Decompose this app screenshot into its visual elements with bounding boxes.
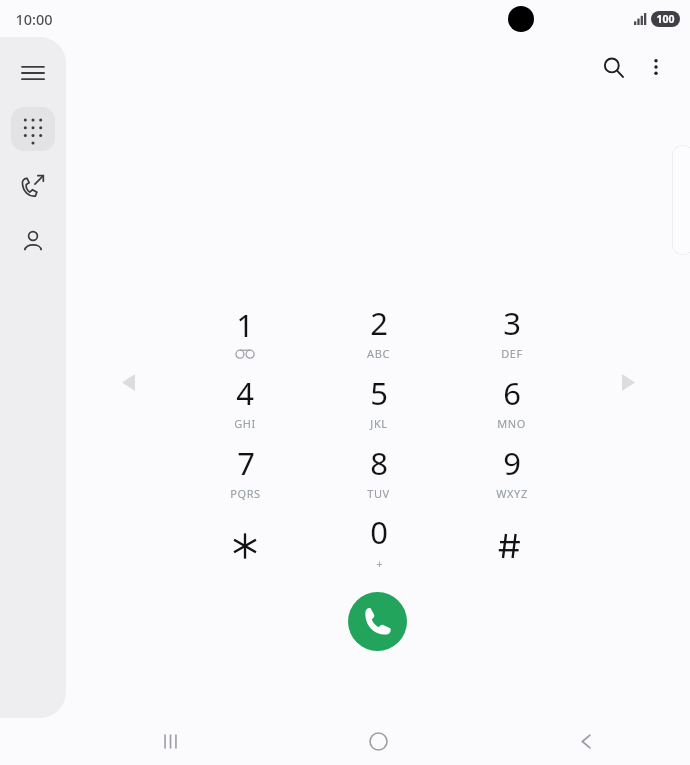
button[interactable]: 2 [312,296,445,366]
button[interactable]: Keypad [11,107,55,151]
staticText: ABC [367,346,390,361]
staticText: 8 [370,442,388,484]
staticText: 5 [370,372,388,414]
button[interactable]: Menu [11,51,55,95]
button[interactable]: Recents [11,163,55,207]
button[interactable]: Previous page [108,362,148,402]
button[interactable]: Home [274,718,482,765]
button[interactable] [445,506,578,576]
button[interactable]: Back [482,718,690,765]
staticText: + [376,556,383,571]
button[interactable]: Search [591,45,635,89]
staticText: GHI [234,416,256,431]
button[interactable]: 6 [445,366,578,436]
staticText: WXYZ [496,486,528,501]
button[interactable] [178,506,312,576]
button[interactable]: 0 [312,506,445,576]
button[interactable]: 8 [312,436,445,506]
button[interactable]: 5 [312,366,445,436]
staticText: 2 [370,302,388,344]
staticText: TUV [367,486,390,501]
staticText: PQRS [230,486,261,501]
staticText: 10:00 [15,9,53,29]
button[interactable]: 7 [178,436,312,506]
button[interactable]: 4 [178,366,312,436]
button[interactable]: Call [348,592,407,651]
staticText: 7 [237,442,255,484]
staticText: 4 [236,372,254,414]
staticText: 3 [503,302,521,344]
staticText: 6 [503,372,521,414]
button[interactable]: 9 [445,436,578,506]
staticText: 100 [656,12,675,26]
button[interactable]: Recent apps [66,718,274,765]
staticText: MNO [497,416,526,431]
staticText: DEF [501,346,523,361]
staticText: 0 [370,511,388,553]
staticText: JKL [370,416,388,431]
staticText: 9 [503,442,521,484]
button[interactable]: Next page [608,362,648,402]
button[interactable]: More options [636,47,676,87]
button[interactable]: Contacts [11,219,55,263]
button[interactable]: 3 [445,296,578,366]
button[interactable]: 1 [178,296,312,366]
staticText: 1 [236,304,254,346]
